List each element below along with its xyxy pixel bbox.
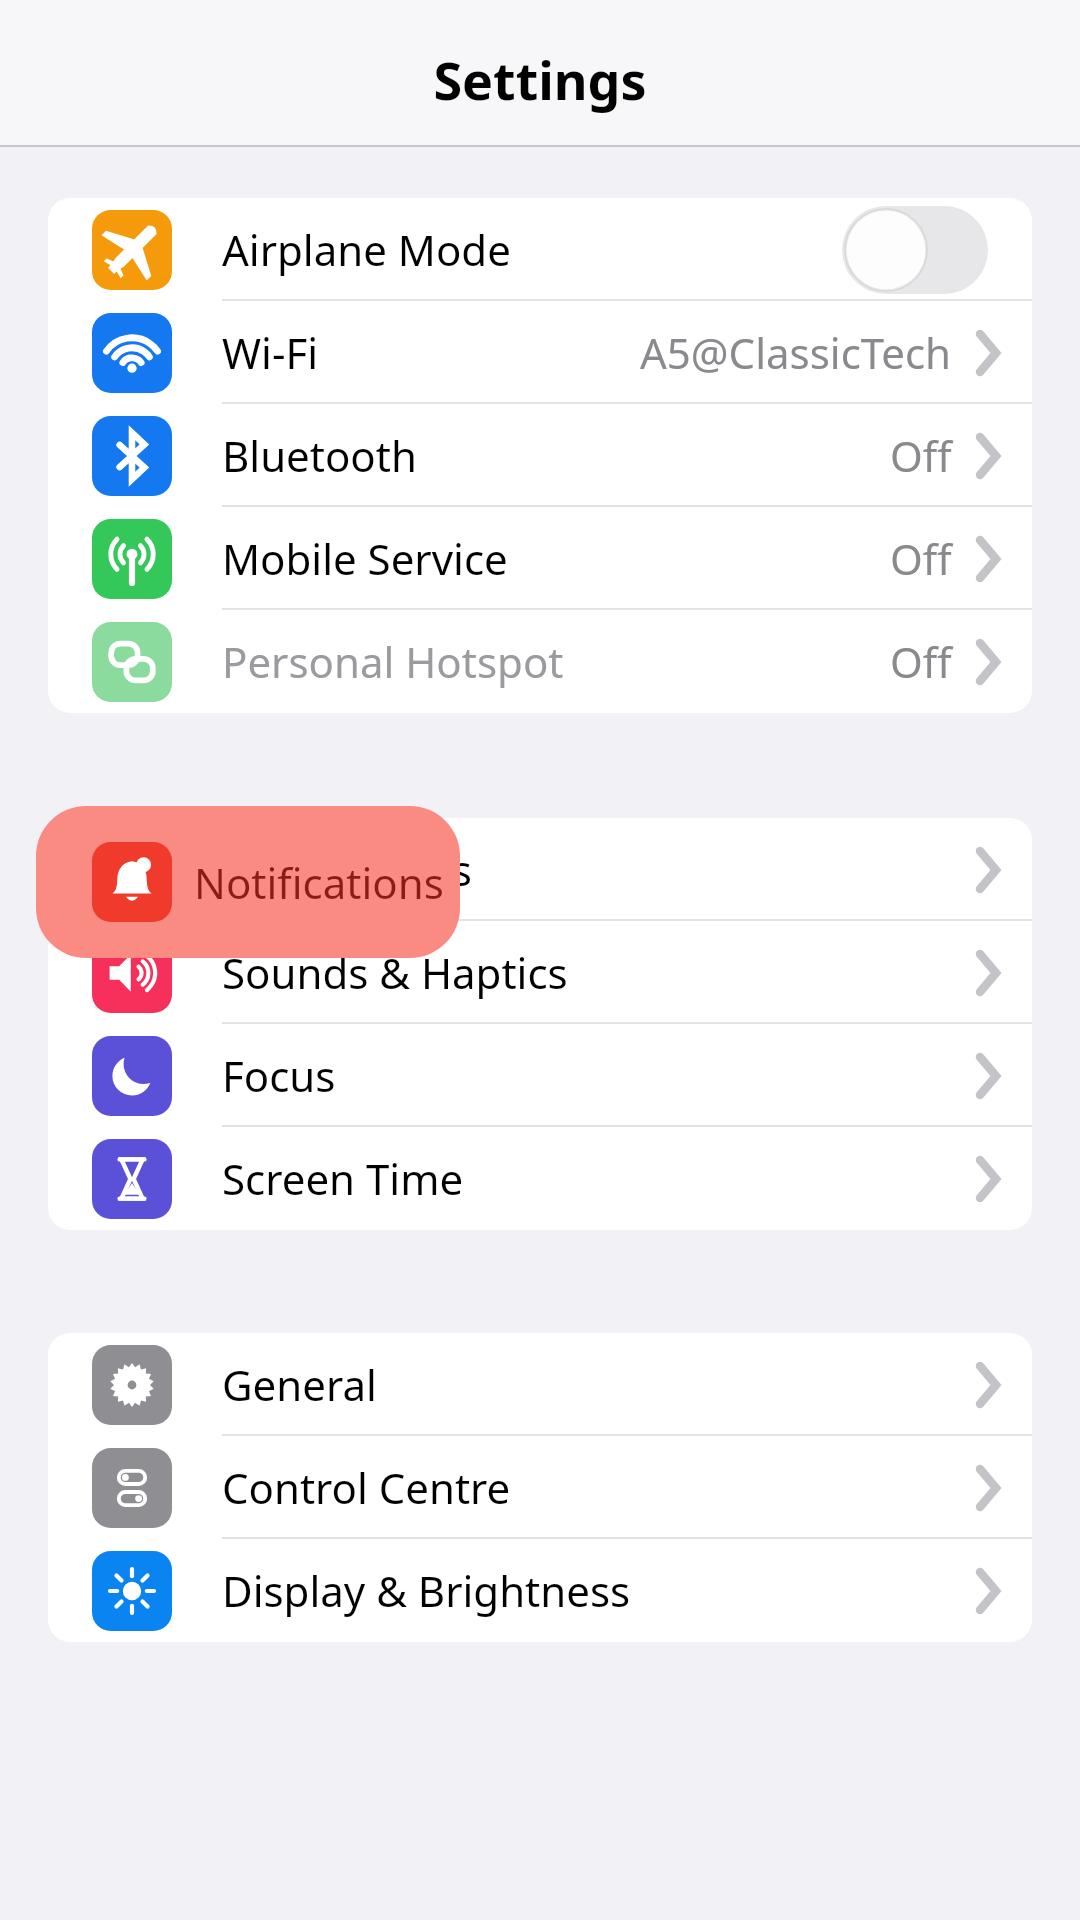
button[interactable]: Control Centre: [48, 1436, 1032, 1539]
button[interactable]: Notifications: [48, 818, 1032, 921]
button[interactable]: Mobile Service: [48, 507, 1032, 610]
button[interactable]: Bluetooth: [48, 404, 1032, 507]
staticText: Off: [890, 530, 952, 587]
button[interactable]: Focus: [48, 1024, 1032, 1127]
staticText: Notifications: [222, 841, 472, 898]
button[interactable]: Notifications: [36, 806, 460, 958]
staticText: Bluetooth: [222, 427, 417, 484]
staticText: Display & Brightness: [222, 1562, 631, 1619]
button[interactable]: Wi-Fi: [48, 301, 1032, 404]
staticText: Control Centre: [222, 1459, 511, 1516]
staticText: Off: [890, 633, 952, 690]
staticText: Sounds & Haptics: [222, 944, 568, 1001]
staticText: Settings: [433, 44, 647, 115]
staticText: Mobile Service: [222, 530, 508, 587]
staticText: A5@ClassicTech: [640, 324, 952, 381]
button[interactable]: Sounds & Haptics: [48, 921, 1032, 1024]
button[interactable]: Display & Brightness: [48, 1539, 1032, 1642]
button[interactable]: Personal Hotspot: [48, 610, 1032, 713]
staticText: Airplane Mode: [222, 221, 511, 278]
button[interactable]: Screen Time: [48, 1127, 1032, 1230]
staticText: Notifications: [194, 854, 444, 911]
staticText: Screen Time: [222, 1150, 464, 1207]
button[interactable]: Airplane Mode: [48, 198, 1032, 301]
button[interactable]: General: [48, 1333, 1032, 1436]
staticText: Off: [890, 427, 952, 484]
staticText: Focus: [222, 1047, 336, 1104]
staticText: Wi-Fi: [222, 324, 319, 381]
staticText: Personal Hotspot: [222, 633, 564, 690]
staticText: General: [222, 1356, 377, 1413]
